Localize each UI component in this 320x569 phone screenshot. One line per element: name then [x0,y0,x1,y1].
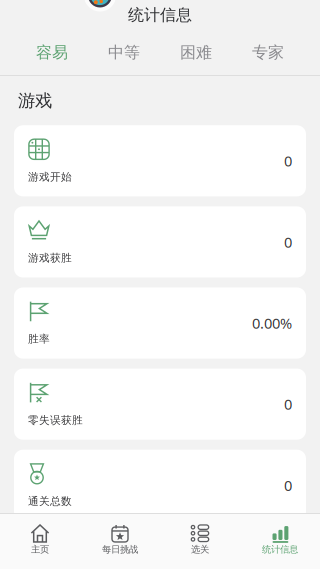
staticText: 通关总数 [28,495,72,508]
staticText: 0 [284,151,292,171]
staticText: 选关 [191,544,209,555]
staticText: 0 [284,475,292,495]
staticText: 每日挑战 [102,544,138,555]
staticText: 困难 [180,43,212,62]
staticText: 胜率 [28,332,50,346]
staticText: 0.00% [252,313,292,333]
button[interactable]: 选关 [160,524,240,555]
button[interactable]: 通关总数 [14,450,306,521]
button[interactable]: 零失误获胜 [14,369,306,440]
button[interactable]: 主页 [0,524,80,555]
button[interactable]: 专家 [232,33,304,72]
staticText: 统计信息 [262,544,298,555]
button[interactable]: 游戏开始 [14,125,306,196]
button[interactable]: 游戏获胜 [14,206,306,277]
staticText: 游戏开始 [28,170,72,183]
staticText: 容易 [36,43,68,62]
staticText: 0 [284,232,292,252]
staticText: 游戏获胜 [28,251,72,264]
staticText: 零失误获胜 [28,414,83,427]
staticText: 主页 [31,544,49,555]
staticText: 中等 [108,43,140,62]
button[interactable]: 容易 [16,33,88,72]
button[interactable]: 中等 [88,33,160,72]
staticText: 统计信息 [128,5,192,25]
staticText: 专家 [252,43,284,62]
staticText: 游戏 [18,90,52,111]
button[interactable]: 统计信息 [240,524,320,555]
button[interactable]: 胜率 [14,287,306,359]
button[interactable]: 困难 [160,33,232,72]
staticText: 0 [284,394,292,414]
button[interactable]: 每日挑战 [80,524,160,555]
